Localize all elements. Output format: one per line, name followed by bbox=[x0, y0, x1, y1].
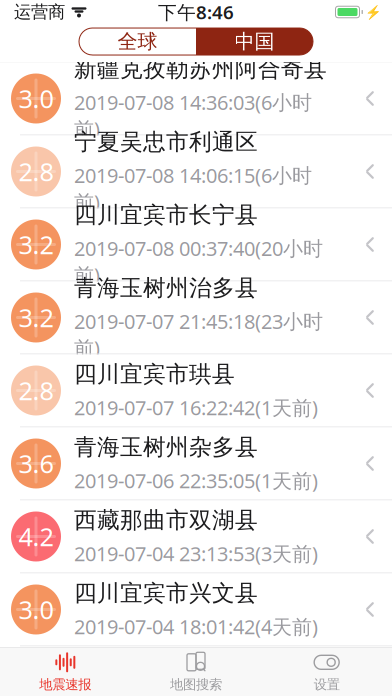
button[interactable]: 3.1 bbox=[0, 646, 392, 696]
staticText: 青海玉树州治多县 bbox=[74, 274, 258, 302]
staticText: 中国 bbox=[234, 29, 274, 54]
staticText: 2019-07-06 22:35:05(1天前) bbox=[74, 467, 318, 494]
staticText: 四川宜宾市兴文县 bbox=[74, 579, 258, 607]
staticText: 地震速报 bbox=[39, 676, 91, 693]
staticText: 四川宜宾市长宁县 bbox=[74, 201, 258, 229]
staticText: 新疆克孜勒苏州阿合奇县 bbox=[74, 55, 327, 83]
staticText: 3.0 bbox=[18, 82, 53, 115]
staticText: 3.6 bbox=[18, 447, 53, 480]
button[interactable]: 中国 bbox=[196, 28, 313, 55]
staticText: 2019-07-08 14:06:15(6小时前) bbox=[74, 162, 312, 215]
staticText: 设置 bbox=[314, 676, 340, 693]
button[interactable]: 3.0 bbox=[0, 573, 392, 646]
staticText: 2019-07-04 23:13:53(3天前) bbox=[74, 540, 318, 567]
button[interactable]: 3.2 bbox=[0, 281, 392, 354]
button[interactable]: 3.0 bbox=[0, 62, 392, 135]
staticText: 四川宜宾市珙县 bbox=[74, 652, 235, 680]
button[interactable]: 4.2 bbox=[0, 500, 392, 573]
button[interactable]: 2.8 bbox=[0, 354, 392, 427]
staticText: 全球 bbox=[117, 29, 157, 54]
button[interactable]: 地图搜索 bbox=[131, 648, 261, 696]
staticText: 下午8:46 bbox=[158, 0, 234, 24]
staticText: 2019-07-07 21:45:18(23小时前) bbox=[74, 308, 323, 361]
button[interactable]: 全球 bbox=[79, 28, 196, 55]
staticText: 3.2 bbox=[18, 228, 53, 261]
button[interactable]: 2.8 bbox=[0, 135, 392, 208]
staticText: 3.1 bbox=[18, 666, 53, 696]
staticText: 宁夏吴忠市利通区 bbox=[74, 128, 258, 156]
staticText: 2019-07-07 16:22:42(1天前) bbox=[74, 394, 318, 421]
staticText: 2019-07-04 18:01:42(4天前) bbox=[74, 613, 318, 640]
button[interactable]: 设置 bbox=[261, 648, 392, 696]
button[interactable]: 3.6 bbox=[0, 427, 392, 500]
staticText: 2019-07-08 14:36:03(6小时前) bbox=[74, 89, 312, 142]
staticText: 地图搜索 bbox=[170, 676, 222, 693]
staticText: 2.8 bbox=[18, 374, 53, 407]
staticText: 3.2 bbox=[18, 301, 53, 334]
staticText: 西藏那曲市双湖县 bbox=[74, 506, 258, 534]
staticText: ⚡ bbox=[365, 4, 382, 20]
staticText: 2.8 bbox=[18, 155, 53, 188]
staticText: 3.0 bbox=[18, 593, 53, 626]
button[interactable]: 3.2 bbox=[0, 208, 392, 281]
staticText: 2019-07-04 09:12:10(4天前) bbox=[74, 686, 318, 696]
staticText: 2019-07-08 00:37:40(20小时前) bbox=[74, 235, 323, 288]
staticText: 青海玉树州杂多县 bbox=[74, 433, 258, 461]
button[interactable]: 地震速报 bbox=[0, 648, 131, 696]
staticText: 4.2 bbox=[18, 520, 53, 553]
staticText: 四川宜宾市珙县 bbox=[74, 360, 235, 388]
staticText: 运营商 bbox=[14, 1, 65, 23]
